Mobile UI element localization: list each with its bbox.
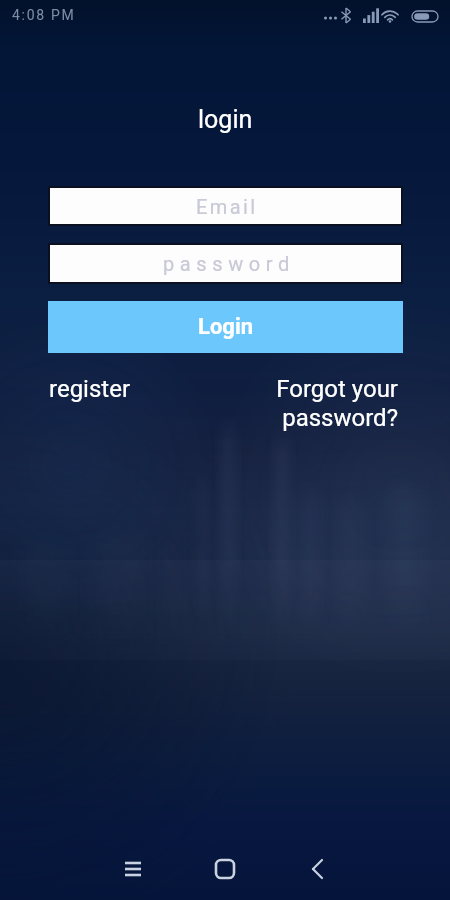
staticText: password [163,252,295,275]
button[interactable]: password [50,245,401,282]
button[interactable]: Recent apps [109,845,157,893]
staticText: Email [196,195,258,218]
button[interactable]: Login [48,301,403,353]
button[interactable]: Back [293,845,341,893]
button[interactable]: register [49,375,131,403]
staticText: login [198,105,253,134]
button[interactable]: Forgot your password? [238,375,398,432]
button[interactable]: Home [201,845,249,893]
staticText: Forgot your password? [238,375,398,432]
staticText: 4:08 PM [12,7,76,23]
staticText: register [49,375,131,403]
button[interactable]: Email [50,188,401,224]
staticText: Login [198,314,254,340]
